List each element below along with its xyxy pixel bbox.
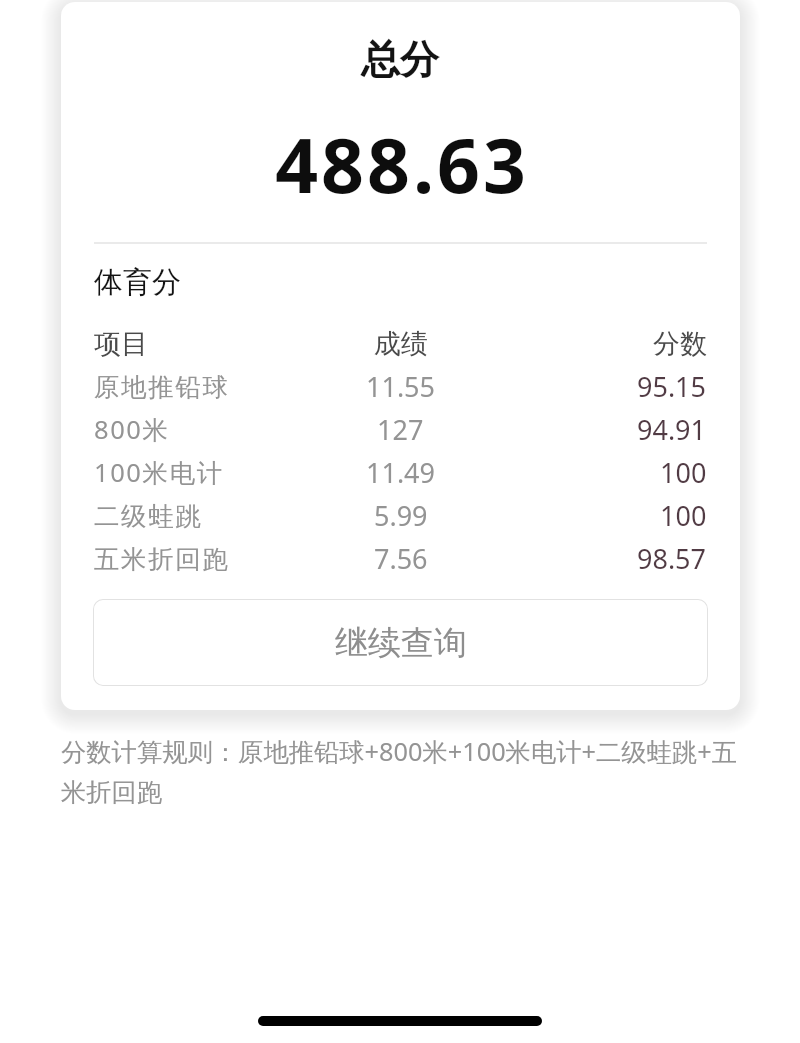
staticText: 7.56	[374, 540, 428, 577]
staticText: 成绩	[374, 327, 428, 361]
staticText: 127	[377, 411, 424, 448]
staticText: 分数计算规则：原地推铅球+800米+100米电计+二级蛙跳+五米折回跑	[61, 734, 751, 808]
staticText: 原地推铅球	[94, 371, 230, 403]
staticText: 二级蛙跳	[94, 500, 203, 532]
staticText: 5.99	[374, 497, 428, 534]
staticText: 继续查询	[335, 622, 467, 664]
button[interactable]: 继续查询	[93, 599, 708, 686]
staticText: 98.57	[637, 540, 707, 577]
staticText: 100	[660, 497, 707, 534]
staticText: 100米电计	[94, 455, 224, 490]
staticText: 体育分	[94, 264, 181, 301]
staticText: 11.49	[366, 454, 436, 491]
staticText: 总分	[361, 35, 439, 84]
staticText: 95.15	[637, 368, 707, 405]
staticText: 800米	[94, 412, 170, 447]
staticText: 488.63	[275, 113, 529, 215]
staticText: 五米折回跑	[94, 543, 230, 575]
staticText: 项目	[94, 327, 148, 361]
staticText: 分数	[653, 327, 707, 361]
staticText: 94.91	[637, 411, 707, 448]
staticText: 100	[660, 454, 707, 491]
staticText: 11.55	[366, 368, 436, 405]
